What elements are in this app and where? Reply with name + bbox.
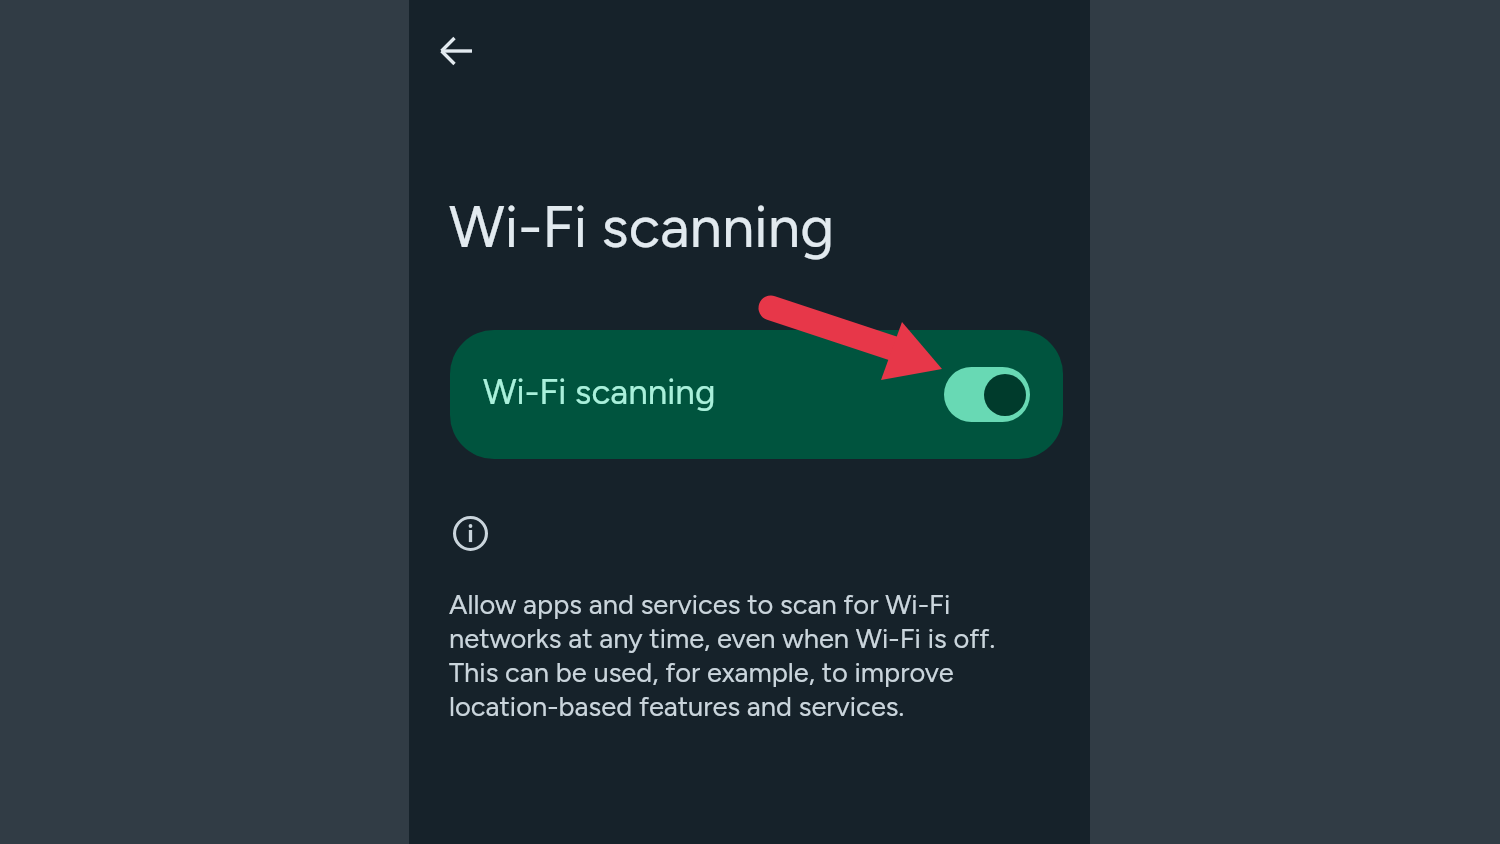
button[interactable]: Back — [421, 15, 493, 87]
button[interactable]: Wi-Fi scanning toggle — [944, 367, 1030, 422]
button[interactable]: Wi-Fi scanning — [450, 330, 1063, 459]
staticText: Wi-Fi scanning — [483, 371, 716, 413]
staticText: Allow apps and services to scan for Wi-F… — [449, 588, 996, 723]
staticText: Wi-Fi scanning — [449, 192, 835, 262]
